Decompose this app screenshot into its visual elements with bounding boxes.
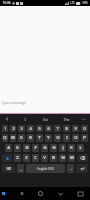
button[interactable]: X bbox=[23, 154, 30, 162]
button[interactable]: 7 bbox=[54, 125, 61, 132]
button[interactable]: 6 bbox=[45, 125, 52, 132]
button[interactable]: I bbox=[14, 114, 35, 124]
button[interactable]: M bbox=[68, 154, 75, 162]
button[interactable]: G bbox=[41, 144, 48, 152]
staticText: W bbox=[11, 135, 15, 141]
button[interactable]: , bbox=[17, 164, 24, 173]
staticText: 0 bbox=[83, 126, 86, 131]
button[interactable]: Type a message bbox=[2, 101, 26, 105]
button[interactable]: English (US) bbox=[26, 164, 65, 173]
button[interactable]: V bbox=[41, 154, 48, 162]
button[interactable]: J bbox=[59, 144, 66, 152]
staticText: 7 bbox=[56, 126, 59, 131]
button[interactable]: Expand toolbar bbox=[0, 114, 14, 124]
button[interactable]: H bbox=[50, 144, 57, 152]
staticText: K bbox=[70, 145, 73, 151]
button[interactable]: A bbox=[5, 144, 12, 152]
staticText: Q bbox=[3, 135, 7, 141]
button[interactable]: Z bbox=[14, 154, 21, 162]
button[interactable]: W bbox=[10, 134, 16, 142]
button[interactable]: Go bbox=[35, 114, 56, 124]
staticText: 10:06 bbox=[2, 1, 11, 5]
button[interactable]: I bbox=[63, 134, 70, 142]
button[interactable]: 2 bbox=[10, 125, 16, 132]
button[interactable]: Backspace bbox=[77, 154, 88, 162]
staticText: U bbox=[56, 135, 60, 141]
staticText: N bbox=[61, 155, 65, 161]
button[interactable]: 3 bbox=[18, 125, 25, 132]
staticText: C bbox=[34, 155, 37, 161]
staticText: ⋯ bbox=[81, 117, 86, 122]
button[interactable]: 0 bbox=[81, 125, 88, 132]
button[interactable]: Change keyboard bbox=[0, 187, 12, 200]
staticText: 90% bbox=[82, 1, 88, 5]
staticText: D bbox=[25, 145, 29, 151]
staticText: The bbox=[63, 117, 70, 122]
button[interactable]: T bbox=[36, 134, 43, 142]
button[interactable]: K bbox=[68, 144, 75, 152]
button[interactable]: L bbox=[77, 144, 84, 152]
button[interactable]: B bbox=[50, 154, 57, 162]
button[interactable]: N bbox=[59, 154, 66, 162]
button[interactable]: The bbox=[56, 114, 77, 124]
staticText: Go bbox=[43, 117, 48, 122]
button[interactable]: !#1 bbox=[2, 164, 15, 173]
button[interactable]: 9 bbox=[72, 125, 79, 132]
button[interactable]: Q bbox=[2, 134, 8, 142]
staticText: P bbox=[83, 135, 86, 141]
staticText: 5 bbox=[38, 126, 41, 131]
staticText: 4 bbox=[29, 126, 32, 131]
staticText: . bbox=[70, 166, 72, 172]
staticText: I bbox=[24, 117, 26, 122]
staticText: G bbox=[43, 145, 47, 151]
button[interactable]: E bbox=[18, 134, 25, 142]
staticText: E bbox=[20, 135, 23, 141]
staticText: Type a message bbox=[2, 101, 26, 105]
staticText: O bbox=[74, 135, 78, 141]
button[interactable]: 8 bbox=[63, 125, 70, 132]
button[interactable]: D bbox=[23, 144, 30, 152]
staticText: J bbox=[62, 145, 64, 151]
staticText: Z bbox=[16, 155, 19, 161]
button[interactable]: Recents bbox=[50, 187, 70, 200]
staticText: X bbox=[25, 155, 28, 161]
staticText: 1 bbox=[4, 126, 7, 131]
staticText: 6 bbox=[47, 126, 50, 131]
staticText: LTE bbox=[70, 1, 75, 5]
staticText: H bbox=[52, 145, 56, 151]
button[interactable]: S bbox=[14, 144, 21, 152]
staticText: I bbox=[66, 135, 68, 141]
button[interactable]: P bbox=[81, 134, 88, 142]
staticText: M bbox=[70, 155, 74, 161]
button[interactable]: More options bbox=[77, 114, 90, 124]
button[interactable]: 1 bbox=[2, 125, 8, 132]
button[interactable]: 4 bbox=[27, 125, 34, 132]
button[interactable]: . bbox=[67, 164, 74, 173]
staticText: 2 bbox=[12, 126, 15, 131]
staticText: T bbox=[38, 135, 41, 141]
staticText: F bbox=[34, 145, 37, 151]
staticText: A bbox=[7, 145, 10, 151]
button[interactable]: U bbox=[54, 134, 61, 142]
staticText: , bbox=[20, 166, 22, 172]
staticText: B bbox=[52, 155, 55, 161]
staticText: !#1 bbox=[6, 166, 12, 171]
staticText: 3 bbox=[20, 126, 23, 131]
staticText: V bbox=[43, 155, 46, 161]
button[interactable]: O bbox=[72, 134, 79, 142]
button[interactable]: Hide keyboard bbox=[70, 187, 90, 200]
staticText: R bbox=[29, 135, 32, 141]
button[interactable]: 5 bbox=[36, 125, 43, 132]
button[interactable]: R bbox=[27, 134, 34, 142]
button[interactable]: Y bbox=[45, 134, 52, 142]
button[interactable]: C bbox=[32, 154, 39, 162]
button[interactable]: Enter bbox=[76, 164, 88, 173]
staticText: English (US) bbox=[37, 167, 54, 171]
staticText: Y bbox=[47, 135, 50, 141]
button[interactable]: F bbox=[32, 144, 39, 152]
staticText: 8 bbox=[65, 126, 68, 131]
button[interactable]: Home bbox=[31, 187, 50, 200]
button[interactable]: Shift bbox=[2, 154, 12, 162]
button[interactable]: Back bbox=[12, 187, 31, 200]
staticText: 9 bbox=[74, 126, 77, 131]
